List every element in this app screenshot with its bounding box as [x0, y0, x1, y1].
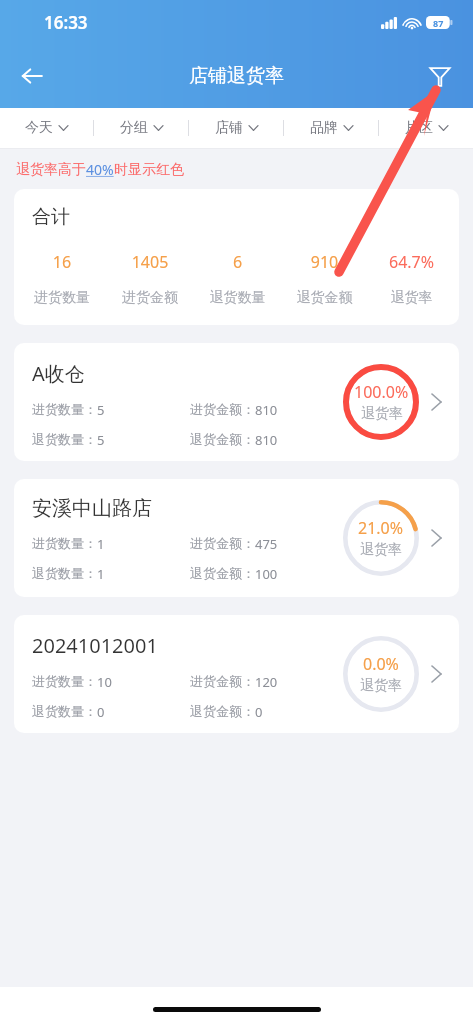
button[interactable]: 合计: [14, 189, 459, 325]
staticText: 5: [97, 431, 105, 449]
button[interactable]: Filter: [417, 53, 463, 99]
staticText: 退货金额：: [190, 565, 255, 581]
staticText: 退货金额: [281, 289, 368, 307]
staticText: 64.7%: [368, 251, 455, 273]
button[interactable]: 今天: [0, 108, 93, 148]
staticText: 分组: [120, 119, 148, 137]
other: Details: [423, 389, 449, 415]
staticText: 退货率: [368, 289, 455, 307]
staticText: 810: [255, 401, 278, 419]
staticText: 退货数量: [194, 289, 281, 307]
staticText: 退货金额：: [190, 703, 255, 719]
staticText: 1: [97, 565, 105, 583]
button[interactable]: 品牌: [284, 108, 378, 148]
button[interactable]: 分组: [94, 108, 188, 148]
staticText: 退货数量：: [32, 703, 97, 719]
staticText: 退货数量：: [32, 565, 97, 581]
staticText: 1: [97, 535, 105, 553]
button[interactable]: Back: [8, 52, 56, 100]
staticText: 合计: [32, 205, 70, 229]
button[interactable]: 安溪中山路店: [14, 479, 459, 597]
staticText: 进货数量：: [32, 401, 97, 417]
staticText: 退货率高于: [16, 161, 86, 179]
staticText: 进货数量：: [32, 673, 97, 689]
staticText: 5: [97, 401, 105, 419]
staticText: 20241012001: [32, 632, 158, 659]
staticText: 品牌: [310, 119, 338, 137]
staticText: 退货数量：: [32, 431, 97, 447]
staticText: 810: [255, 431, 278, 449]
staticText: 安溪中山路店: [32, 496, 152, 521]
staticText: 片区: [405, 119, 433, 137]
staticText: 退货金额：: [190, 431, 255, 447]
staticText: 进货数量：: [32, 535, 97, 551]
staticText: 退货率: [361, 405, 403, 423]
staticText: 475: [255, 535, 278, 553]
button[interactable]: 20241012001: [14, 615, 459, 733]
staticText: 进货金额：: [190, 401, 255, 417]
staticText: 进货金额：: [190, 673, 255, 689]
staticText: 0: [97, 703, 105, 721]
staticText: 1405: [106, 251, 194, 273]
staticText: 16: [18, 251, 106, 273]
staticText: 进货数量: [18, 289, 106, 307]
staticText: 店铺: [215, 119, 243, 137]
staticText: 0: [255, 703, 263, 721]
staticText: 100.0%: [354, 381, 409, 403]
staticText: 店铺退货率: [189, 64, 284, 88]
staticText: 6: [194, 251, 281, 273]
other: Details: [423, 661, 449, 687]
staticText: 退货率: [360, 677, 402, 695]
button[interactable]: 片区: [379, 108, 473, 148]
button[interactable]: 店铺: [189, 108, 283, 148]
staticText: 910: [281, 251, 368, 273]
staticText: 10: [97, 673, 112, 691]
staticText: 100: [255, 565, 278, 583]
staticText: 退货率: [360, 541, 402, 559]
staticText: 时显示红色: [114, 161, 184, 179]
staticText: 16:33: [44, 11, 88, 34]
staticText: 进货金额：: [190, 535, 255, 551]
staticText: 120: [255, 673, 278, 691]
staticText: 0.0%: [363, 653, 399, 675]
button[interactable]: 40%: [86, 160, 114, 179]
staticText: A收仓: [32, 360, 85, 387]
other: Details: [423, 525, 449, 551]
staticText: 21.0%: [358, 517, 404, 539]
staticText: 进货金额: [106, 289, 194, 307]
staticText: 87: [433, 17, 444, 29]
button[interactable]: A收仓: [14, 343, 459, 461]
staticText: 今天: [25, 119, 53, 137]
